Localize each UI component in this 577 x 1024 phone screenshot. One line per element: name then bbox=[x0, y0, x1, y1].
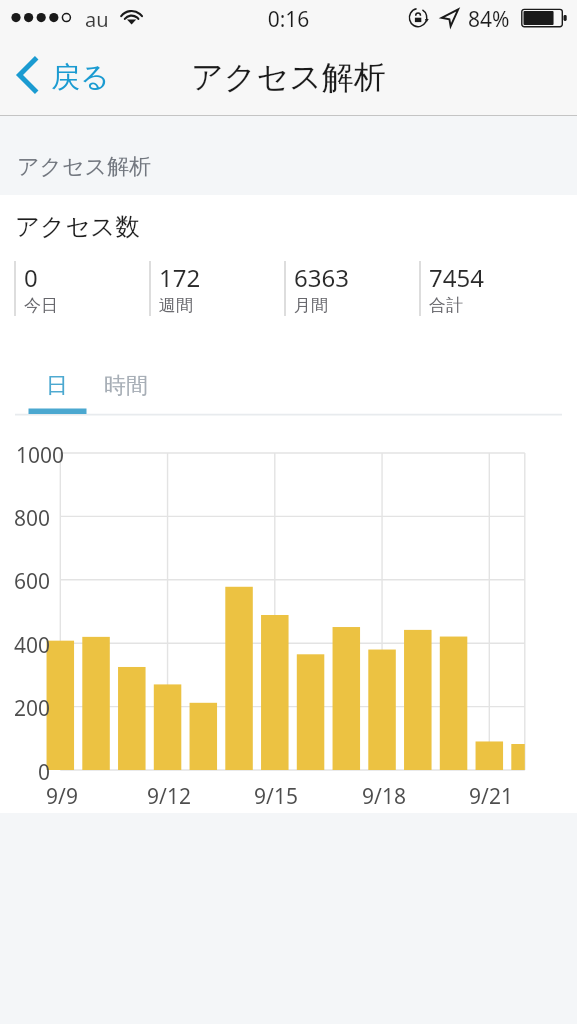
staticText: アクセス解析 bbox=[191, 57, 386, 97]
other: 戻る bbox=[17, 56, 38, 94]
staticText: 0:16 bbox=[0, 5, 577, 34]
staticText: au bbox=[85, 6, 109, 33]
staticText: 0 bbox=[0, 758, 50, 787]
staticText: 月間 bbox=[294, 295, 328, 316]
staticText: 9/15 bbox=[236, 782, 316, 811]
staticText: 週間 bbox=[159, 295, 193, 316]
staticText: 今日 bbox=[24, 295, 58, 316]
staticText: 172 bbox=[159, 261, 201, 294]
staticText: 7454 bbox=[429, 261, 484, 294]
button[interactable]: 日 bbox=[28, 360, 86, 416]
staticText: 400 bbox=[0, 631, 50, 660]
staticText: 84% bbox=[468, 5, 510, 34]
staticText: 9/9 bbox=[22, 782, 102, 811]
staticText: 6363 bbox=[294, 261, 349, 294]
staticText: アクセス解析 bbox=[17, 153, 152, 181]
staticText: 200 bbox=[0, 694, 50, 723]
button[interactable]: 時間 bbox=[96, 360, 156, 416]
staticText: 戻る bbox=[51, 59, 110, 96]
staticText: 日 bbox=[46, 372, 68, 400]
staticText: アクセス数 bbox=[15, 211, 140, 242]
staticText: 9/21 bbox=[451, 782, 531, 811]
staticText: 0 bbox=[24, 261, 38, 294]
staticText: 800 bbox=[0, 504, 50, 533]
staticText: 9/12 bbox=[129, 782, 209, 811]
staticText: 合計 bbox=[429, 295, 463, 316]
staticText: 1000 bbox=[16, 441, 65, 470]
staticText: 9/18 bbox=[344, 782, 424, 811]
staticText: 時間 bbox=[104, 372, 148, 400]
button[interactable]: 戻る bbox=[8, 46, 124, 110]
staticText: 600 bbox=[0, 567, 50, 596]
